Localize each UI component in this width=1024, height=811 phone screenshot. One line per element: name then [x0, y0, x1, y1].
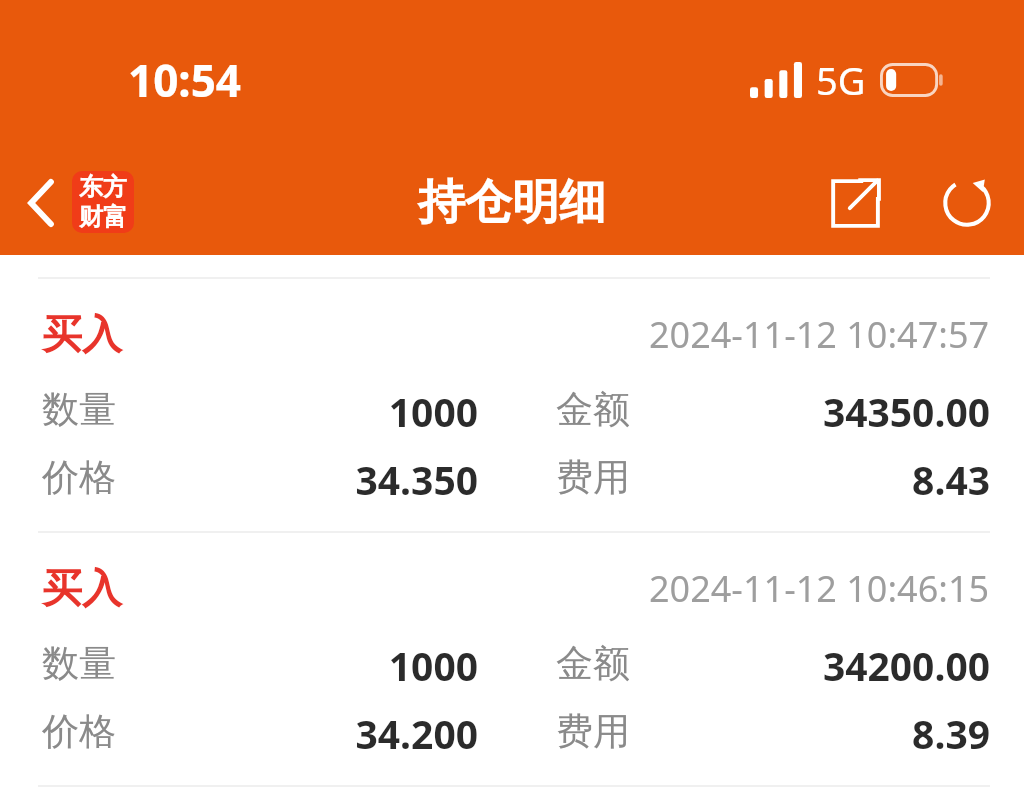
button[interactable]: Back: [10, 172, 72, 234]
staticText: 价格: [42, 454, 116, 501]
staticText: 8.39: [912, 707, 990, 755]
staticText: 东方: [79, 172, 127, 202]
button[interactable]: East Money logo: [72, 171, 134, 233]
staticText: 2024-11-12 10:46:15: [649, 564, 990, 613]
button[interactable]: 买入: [0, 279, 1024, 531]
button[interactable]: Share: [818, 166, 892, 240]
staticText: 金额: [556, 386, 630, 433]
staticText: 1000: [388, 639, 478, 687]
staticText: 费用: [556, 454, 630, 501]
staticText: 买入: [42, 563, 122, 613]
staticText: 金额: [556, 640, 630, 687]
staticText: 数量: [42, 386, 116, 433]
staticText: 5G: [816, 54, 866, 106]
staticText: 数量: [42, 640, 116, 687]
staticText: 2024-11-12 10:47:57: [649, 310, 990, 359]
button[interactable]: Refresh: [930, 166, 1004, 240]
staticText: 8.43: [912, 453, 990, 501]
staticText: 1000: [388, 385, 478, 433]
staticText: 财富: [79, 202, 127, 232]
staticText: 10:54: [128, 50, 242, 110]
staticText: 34350.00: [822, 385, 990, 433]
staticText: 34.200: [355, 707, 478, 755]
staticText: 价格: [42, 708, 116, 755]
staticText: 持仓明细: [418, 173, 606, 232]
staticText: 34.350: [355, 453, 478, 501]
staticText: 34200.00: [822, 639, 990, 687]
staticText: 买入: [42, 309, 122, 359]
button[interactable]: 买入: [0, 533, 1024, 785]
staticText: 费用: [556, 708, 630, 755]
